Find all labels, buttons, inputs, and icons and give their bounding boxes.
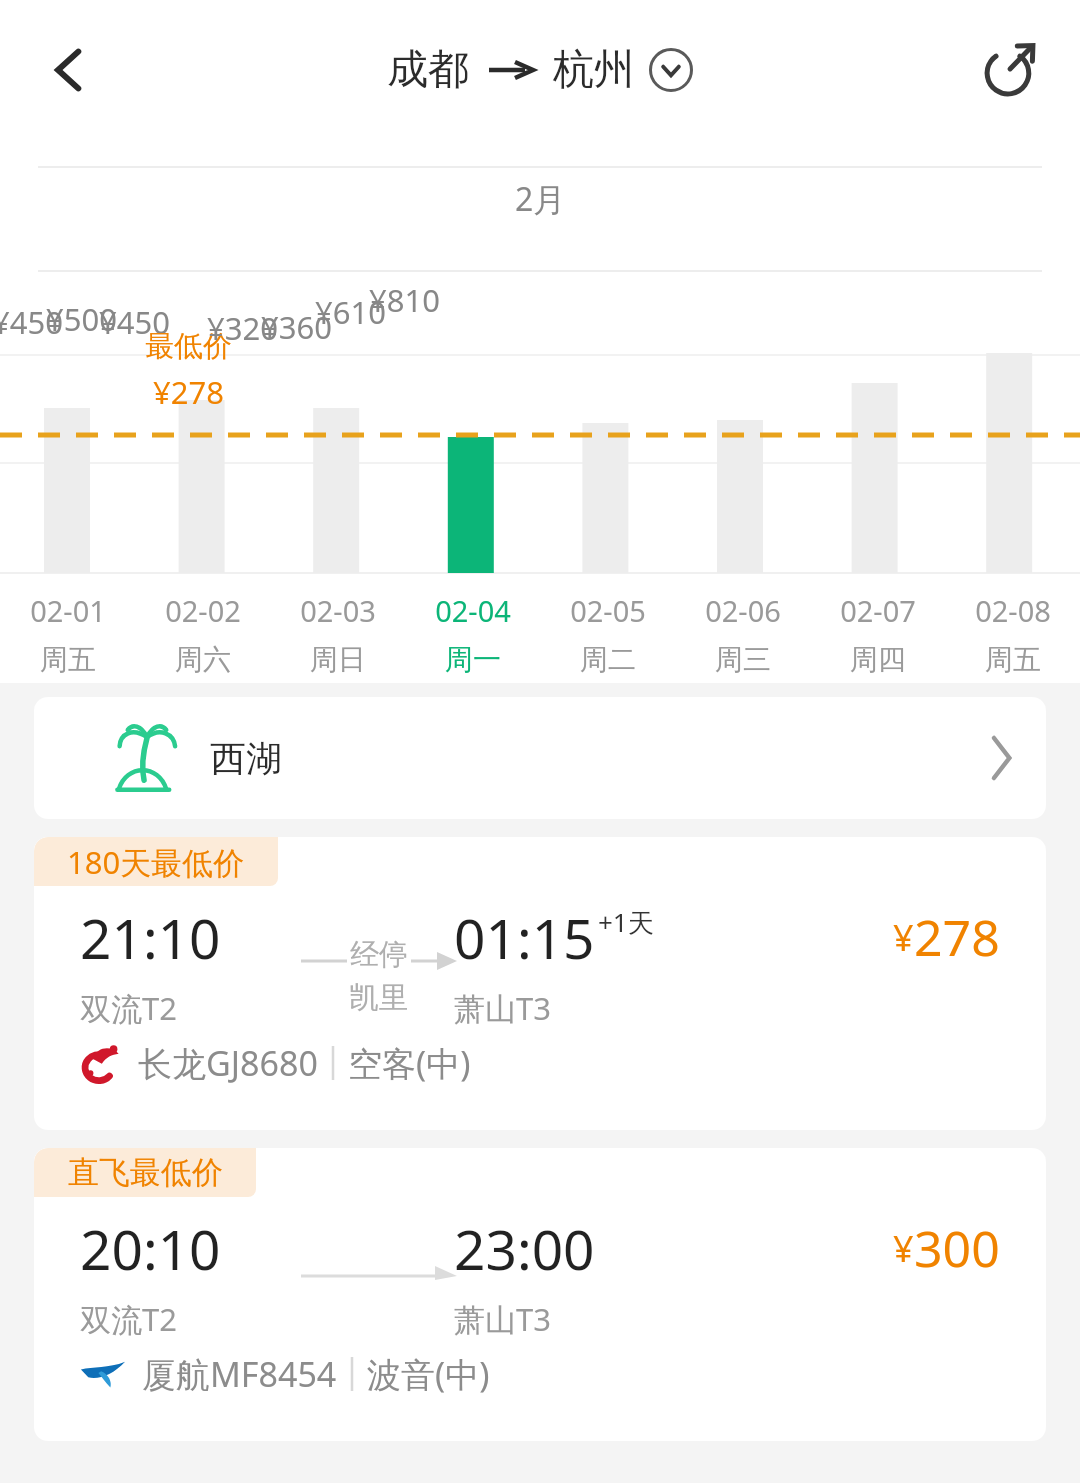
- button[interactable]: Share: [966, 27, 1052, 113]
- staticText: 23:00: [454, 1211, 595, 1286]
- staticText: 278: [914, 903, 1000, 971]
- staticText: +1天: [598, 904, 654, 940]
- staticText: 周一: [445, 642, 501, 677]
- staticText: 周四: [850, 642, 906, 677]
- staticText: ¥450: [0, 301, 63, 343]
- staticText: 02-05: [570, 591, 646, 630]
- staticText: ¥500: [46, 298, 117, 340]
- button[interactable]: 180天最低价: [34, 837, 1046, 1130]
- staticText: 周六: [175, 642, 231, 677]
- staticText: 02-04: [435, 591, 511, 630]
- staticText: ¥320: [207, 307, 278, 349]
- staticText: 02-07: [840, 591, 916, 630]
- staticText: 双流T2: [80, 1298, 177, 1340]
- staticText: 周日: [310, 642, 366, 677]
- staticText: 长龙GJ8680: [138, 1040, 318, 1086]
- staticText: 最低价: [145, 328, 232, 365]
- staticText: 成都: [387, 44, 469, 96]
- button[interactable]: 成都: [387, 44, 693, 96]
- staticText: 厦航MF8454: [142, 1351, 337, 1397]
- staticText: 空客(中): [348, 1040, 471, 1086]
- staticText: ¥: [893, 1224, 914, 1273]
- staticText: ¥278: [153, 371, 224, 413]
- staticText: 01:15: [454, 900, 595, 975]
- staticText: 02-03: [300, 591, 376, 630]
- staticText: 02-02: [165, 591, 241, 630]
- staticText: 02-08: [975, 591, 1051, 630]
- staticText: 02-01: [30, 591, 106, 630]
- staticText: 21:10: [80, 900, 221, 975]
- button[interactable]: 02-04: [405, 591, 540, 677]
- staticText: 凯里: [349, 979, 409, 1017]
- button[interactable]: 02-02: [135, 591, 270, 677]
- button[interactable]: 直飞最低价: [34, 1148, 1046, 1441]
- staticText: 经停: [350, 936, 408, 973]
- staticText: 直飞最低价: [68, 1153, 223, 1192]
- staticText: 周五: [985, 642, 1041, 677]
- button[interactable]: 02-08: [945, 591, 1080, 677]
- staticText: 20:10: [80, 1211, 221, 1286]
- staticText: 2月: [515, 177, 566, 221]
- staticText: 杭州: [553, 44, 635, 96]
- staticText: 180天最低价: [67, 841, 245, 883]
- staticText: ¥450: [99, 301, 170, 343]
- staticText: 西湖: [210, 736, 282, 781]
- button[interactable]: 西湖: [34, 697, 1046, 819]
- staticText: 萧山T3: [454, 1298, 551, 1340]
- staticText: 300: [914, 1214, 1000, 1282]
- staticText: ¥610: [315, 291, 386, 333]
- staticText: 双流T2: [80, 987, 177, 1029]
- staticText: ¥810: [369, 279, 440, 321]
- button[interactable]: 02-03: [270, 591, 405, 677]
- staticText: 02-06: [705, 591, 781, 630]
- staticText: 萧山T3: [454, 987, 551, 1029]
- staticText: 周五: [40, 642, 96, 677]
- staticText: 周二: [580, 642, 636, 677]
- button[interactable]: 02-01: [0, 591, 135, 677]
- staticText: 周三: [715, 642, 771, 677]
- staticText: ¥360: [261, 306, 332, 348]
- staticText: ¥: [893, 913, 914, 962]
- button[interactable]: Back: [28, 28, 112, 112]
- button[interactable]: 02-06: [675, 591, 810, 677]
- button[interactable]: 02-07: [810, 591, 945, 677]
- button[interactable]: 02-05: [540, 591, 675, 677]
- staticText: 波音(中): [367, 1351, 490, 1397]
